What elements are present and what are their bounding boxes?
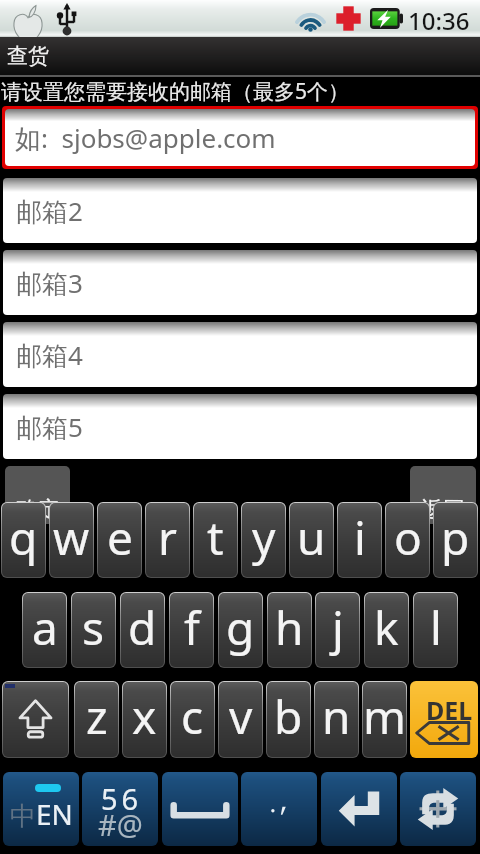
staticText: z xyxy=(86,685,108,748)
staticText: 邮箱4 xyxy=(16,337,83,373)
button[interactable]: e xyxy=(98,503,141,577)
button[interactable]: q xyxy=(2,503,45,577)
button[interactable]: h xyxy=(268,593,311,667)
staticText: DEL xyxy=(426,693,473,727)
button[interactable]: Space xyxy=(162,772,238,846)
button[interactable]: a xyxy=(23,593,66,667)
button[interactable]: v xyxy=(219,682,262,757)
staticText: x xyxy=(132,685,157,748)
button[interactable]: Switch keyboard xyxy=(400,772,476,846)
staticText: #@ xyxy=(98,805,143,844)
staticText: m xyxy=(363,685,406,748)
staticText: e xyxy=(107,506,133,569)
staticText: a xyxy=(32,596,58,659)
button[interactable]: l xyxy=(414,593,457,667)
button[interactable]: c xyxy=(171,682,214,757)
staticText: w xyxy=(53,506,90,569)
button[interactable]: b xyxy=(267,682,310,757)
staticText: 中 xyxy=(10,800,36,833)
staticText: h xyxy=(275,596,304,659)
staticText: 查货 xyxy=(7,43,49,69)
staticText: 56 xyxy=(101,779,143,818)
button[interactable]: m xyxy=(363,682,406,757)
button[interactable]: 如: sjobs@apple.com xyxy=(5,109,475,166)
staticText: y xyxy=(252,506,276,569)
button[interactable]: Punctuation xyxy=(241,772,317,846)
button[interactable]: s xyxy=(72,593,115,667)
button[interactable]: u xyxy=(290,503,333,577)
button[interactable]: Enter xyxy=(321,772,397,846)
staticText: 确定 xyxy=(16,496,60,524)
button[interactable]: 邮箱3 xyxy=(3,250,477,315)
staticText: n xyxy=(322,685,351,748)
button[interactable]: 确定 xyxy=(5,466,70,524)
staticText: t xyxy=(207,506,224,569)
staticText: i xyxy=(354,506,366,569)
button[interactable]: g xyxy=(219,593,262,667)
button[interactable]: w xyxy=(50,503,93,577)
staticText: 邮箱3 xyxy=(16,265,83,301)
button[interactable]: i xyxy=(338,503,381,577)
button[interactable]: Shift xyxy=(3,682,68,757)
button[interactable]: z xyxy=(75,682,118,757)
staticText: j xyxy=(332,596,344,659)
button[interactable]: 邮箱2 xyxy=(3,178,477,243)
staticText: 如: sjobs@apple.com xyxy=(15,120,276,156)
staticText: g xyxy=(226,596,255,659)
staticText: q xyxy=(9,506,38,569)
staticText: u xyxy=(297,506,326,569)
button[interactable]: 返回 xyxy=(410,466,476,524)
staticText: k xyxy=(374,596,399,659)
button[interactable]: x xyxy=(123,682,166,757)
staticText: 10:36 xyxy=(408,4,470,37)
button[interactable]: Symbols xyxy=(82,772,158,846)
button[interactable]: t xyxy=(194,503,237,577)
button[interactable]: f xyxy=(170,593,213,667)
staticText: r xyxy=(158,506,177,569)
button[interactable]: j xyxy=(316,593,359,667)
staticText: c xyxy=(181,685,204,748)
button[interactable]: n xyxy=(315,682,358,757)
staticText: f xyxy=(184,596,200,659)
button[interactable]: p xyxy=(434,503,477,577)
staticText: v xyxy=(229,685,253,748)
staticText: o xyxy=(394,506,422,569)
button[interactable]: Delete xyxy=(410,681,478,758)
staticText: d xyxy=(128,596,157,659)
button[interactable]: 邮箱5 xyxy=(3,394,477,459)
button[interactable]: Switch input language xyxy=(3,772,79,846)
staticText: s xyxy=(82,596,105,659)
staticText: p xyxy=(441,506,470,569)
staticText: 邮箱2 xyxy=(16,193,83,229)
button[interactable]: d xyxy=(121,593,164,667)
button[interactable]: r xyxy=(146,503,189,577)
staticText: 返回 xyxy=(421,496,465,524)
staticText: EN xyxy=(36,795,73,833)
staticText: b xyxy=(274,685,303,748)
button[interactable]: o xyxy=(386,503,429,577)
button[interactable]: y xyxy=(242,503,285,577)
staticText: 邮箱5 xyxy=(16,409,83,445)
button[interactable]: k xyxy=(365,593,408,667)
staticText: 请设置您需要接收的邮箱（最多5个） xyxy=(1,77,350,106)
staticText: l xyxy=(430,596,442,659)
button[interactable]: 邮箱4 xyxy=(3,322,477,387)
